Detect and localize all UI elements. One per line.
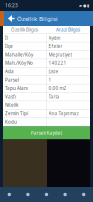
staticText: İl <box>5 35 8 41</box>
staticText: Parseli Kaydet <box>30 130 62 136</box>
staticText: Ana Taşınmaz <box>49 110 79 117</box>
staticText: İlçe <box>5 43 13 49</box>
staticText: Ada <box>5 68 14 75</box>
staticText: 140221 <box>49 60 67 66</box>
staticText: Nitelik <box>5 102 18 108</box>
staticText: Meşrutiyet <box>49 52 73 58</box>
staticText: Kodu <box>5 119 17 125</box>
button[interactable]: Tab <box>56 187 74 202</box>
button[interactable]: Tab <box>74 187 93 202</box>
staticText: Tarla <box>49 94 60 100</box>
button[interactable]: Tab <box>37 187 56 202</box>
staticText: ▰ ● ▮ <box>79 3 89 8</box>
staticText: Vasfı <box>5 94 16 100</box>
staticText: Mahalle/Köy <box>5 52 33 58</box>
button[interactable]: Özellik Bilgisi <box>3 26 46 33</box>
staticText: Özellik Bilgisi <box>17 14 58 23</box>
staticText: Aydın <box>49 35 61 41</box>
staticText: 1 <box>49 77 52 83</box>
button[interactable]: Tab <box>19 187 37 202</box>
button[interactable]: Tab <box>0 187 19 202</box>
button[interactable]: Arazi Bilgisi <box>46 26 90 33</box>
staticText: 16:23 <box>5 2 18 9</box>
staticText: Zemin Tipi <box>5 110 28 117</box>
staticText: Mah./Köy No <box>5 60 33 66</box>
staticText: Efeler <box>49 43 63 49</box>
button[interactable]: Parseli Kaydet <box>3 126 90 139</box>
staticText: 0.00 m2 <box>49 85 67 91</box>
staticText: Arazi Bilgisi <box>56 27 80 33</box>
staticText: Parsel <box>5 77 19 83</box>
staticText: Tapu Alanı <box>5 85 28 91</box>
staticText: Özellik Bilgisi <box>11 27 38 33</box>
staticText: Liste <box>49 68 59 75</box>
button[interactable]: Back <box>4 11 17 26</box>
